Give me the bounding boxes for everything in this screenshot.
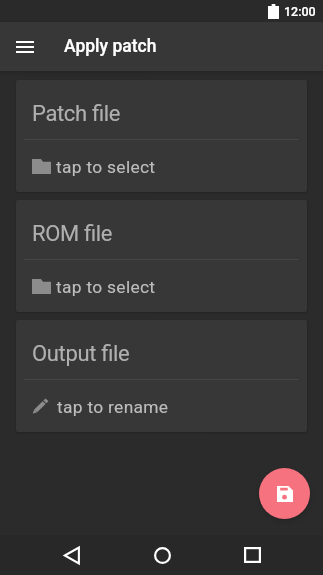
staticText: Apply patch: [64, 36, 157, 57]
staticText: tap to select: [56, 157, 156, 177]
staticText: ROM file: [32, 221, 113, 247]
button[interactable]: Home: [140, 535, 184, 575]
button[interactable]: Open navigation menu: [7, 29, 43, 65]
button[interactable]: ROM file: [16, 200, 307, 312]
staticText: 12:00: [284, 4, 316, 19]
staticText: tap to select: [56, 277, 156, 297]
button[interactable]: Recent apps: [230, 535, 274, 575]
button[interactable]: Save: [259, 468, 310, 519]
staticText: tap to rename: [57, 397, 169, 417]
staticText: Output file: [32, 341, 130, 367]
staticText: Patch file: [32, 101, 121, 127]
button[interactable]: Back: [50, 535, 94, 575]
button[interactable]: Patch file: [16, 80, 307, 192]
button[interactable]: Output file: [16, 320, 307, 432]
